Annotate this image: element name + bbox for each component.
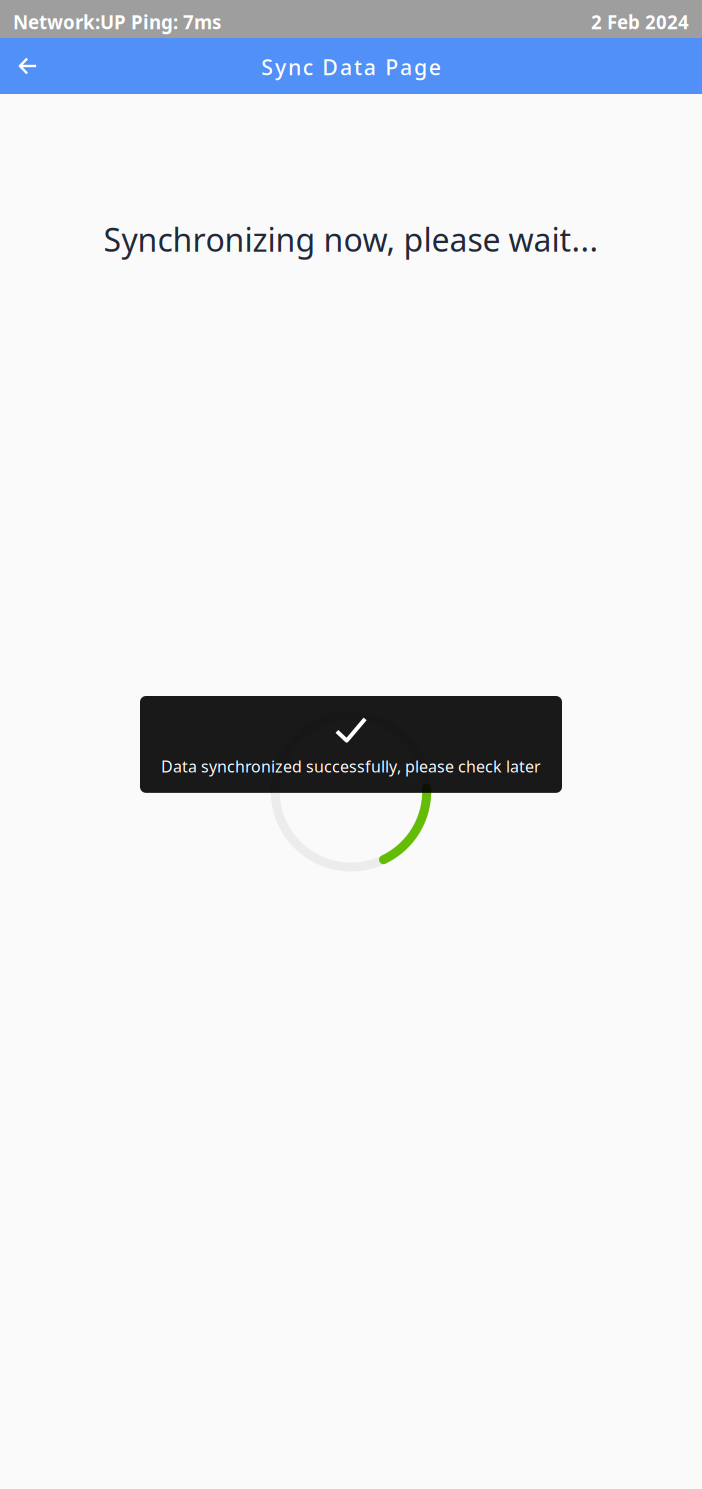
staticText: Sync Data Page xyxy=(261,53,441,81)
staticText: 2 Feb 2024 xyxy=(591,10,689,34)
staticText: Network:UP Ping: 7ms xyxy=(13,10,221,34)
button[interactable]: Back xyxy=(0,38,56,94)
staticText: Synchronizing now, please wait... xyxy=(103,218,598,260)
staticText: Data synchronized successfully, please c… xyxy=(161,756,541,777)
